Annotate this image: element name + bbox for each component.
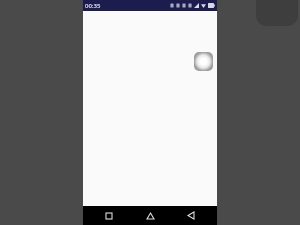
button[interactable]: Home	[135, 206, 165, 225]
button[interactable]: Back	[176, 206, 206, 225]
button[interactable]: Recents	[94, 206, 124, 225]
button[interactable]: Capture	[194, 52, 213, 71]
staticText: 00:35	[85, 2, 101, 10]
